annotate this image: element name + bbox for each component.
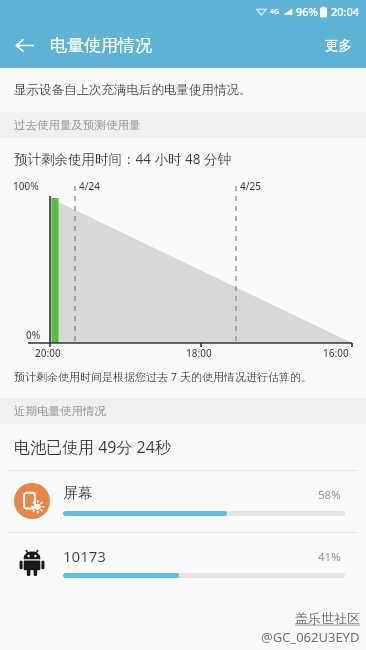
staticText: @GC_062U3EYD bbox=[261, 628, 360, 646]
staticText: 显示设备自上次充满电后的电量使用情况。 bbox=[14, 82, 252, 98]
staticText: 4/24 bbox=[79, 179, 101, 193]
staticText: 16:00 bbox=[323, 346, 349, 360]
staticText: 41% bbox=[318, 549, 341, 565]
staticText: 电池已使用 49分 24秒 bbox=[14, 436, 171, 458]
staticText: 电量使用情况 bbox=[50, 35, 152, 56]
button[interactable]: 更多 bbox=[311, 27, 366, 64]
staticText: 屏幕 bbox=[63, 484, 93, 503]
staticText: 10173 bbox=[63, 546, 106, 566]
staticText: 过去使用量及预测使用量 bbox=[14, 118, 141, 132]
staticText: 近期电量使用情况 bbox=[14, 404, 106, 418]
staticText: 58% bbox=[318, 487, 341, 503]
staticText: 100% bbox=[13, 179, 39, 193]
staticText: 预计剩余使用时间：44 小时 48 分钟 bbox=[14, 150, 231, 168]
staticText: 20:04 bbox=[331, 4, 360, 19]
staticText: 96% bbox=[296, 4, 318, 19]
staticText: 更多 bbox=[325, 37, 352, 54]
button[interactable]: 屏幕 bbox=[0, 471, 366, 532]
button[interactable]: Back bbox=[4, 25, 44, 65]
staticText: 盖乐世社区 bbox=[295, 610, 360, 626]
staticText: 20:00 bbox=[35, 346, 61, 360]
staticText: 18:00 bbox=[186, 346, 212, 360]
staticText: 预计剩余使用时间是根据您过去 7 天的使用情况进行估算的。 bbox=[14, 369, 313, 384]
staticText: 4/25 bbox=[240, 179, 262, 193]
staticText: 0% bbox=[26, 328, 41, 342]
staticText: 4G bbox=[270, 7, 280, 17]
button[interactable]: 10173 bbox=[0, 533, 366, 594]
